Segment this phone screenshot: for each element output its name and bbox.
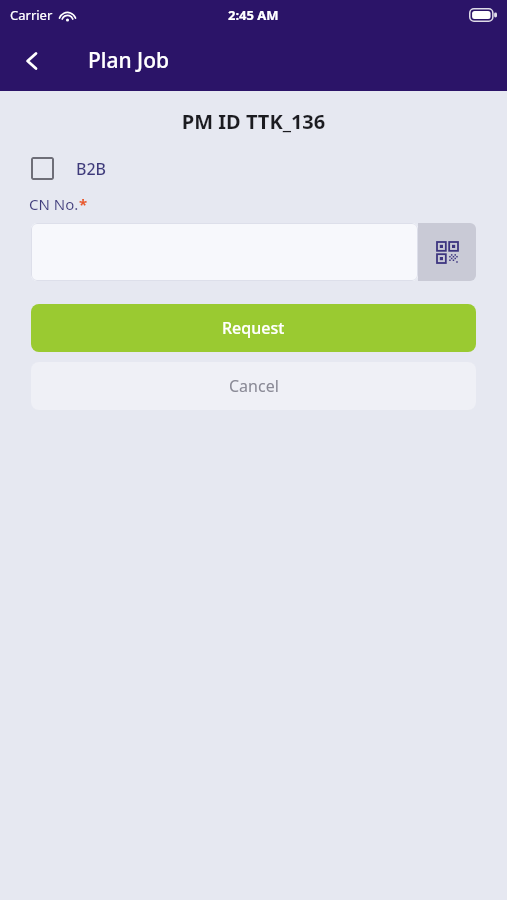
button[interactable]: Scan QR code: [418, 223, 476, 281]
staticText: PM ID TTK_136: [0, 108, 507, 135]
staticText: Request: [222, 317, 285, 339]
staticText: *: [79, 194, 88, 214]
staticText: 2:45 AM: [228, 6, 279, 24]
button[interactable]: B2B: [31, 155, 115, 182]
staticText: Carrier: [10, 6, 53, 24]
button[interactable]: Request: [31, 304, 476, 352]
staticText: Cancel: [229, 375, 279, 397]
staticText: B2B: [76, 158, 107, 180]
staticText: Plan Job: [88, 46, 170, 75]
staticText: CN No.: [29, 194, 79, 214]
button[interactable]: Cancel: [31, 362, 476, 410]
button[interactable]: Back: [8, 37, 56, 85]
button[interactable]: [31, 223, 418, 281]
